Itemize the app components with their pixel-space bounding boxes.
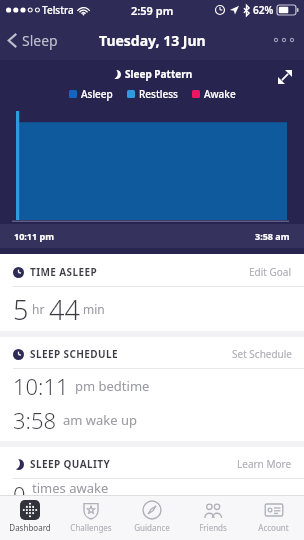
staticText: 10:11	[13, 371, 69, 401]
staticText: 10:11 pm	[14, 230, 54, 242]
button[interactable]: Set Schedule	[220, 341, 304, 367]
button[interactable]: Learn More	[225, 451, 304, 477]
button[interactable]: TIME ASLEEP	[0, 254, 304, 331]
staticText: Dashboard	[9, 522, 51, 533]
staticText: 2:59 pm	[131, 3, 174, 18]
staticText: Account	[258, 522, 289, 533]
staticText: 3:58 am	[255, 230, 290, 242]
staticText: Guidance	[134, 522, 170, 533]
button[interactable]: SLEEP SCHEDULE	[0, 337, 304, 441]
button[interactable]: Friends	[182, 496, 243, 540]
staticText: Learn More	[237, 457, 292, 471]
staticText: hr	[32, 301, 45, 317]
button[interactable]: More options	[264, 28, 304, 52]
staticText: 5	[13, 291, 29, 328]
staticText: Telstra	[42, 3, 74, 17]
staticText: 0	[13, 479, 26, 495]
staticText: Set Schedule	[232, 347, 292, 361]
button[interactable]: Edit Goal	[237, 259, 304, 285]
staticText: min	[83, 301, 105, 317]
staticText: 44	[49, 291, 80, 328]
staticText: 3:58	[13, 405, 57, 435]
button[interactable]: Dashboard	[0, 496, 60, 540]
staticText: SLEEP QUALITY	[30, 457, 111, 471]
button[interactable]: Sleep	[0, 25, 68, 56]
staticText: Tuesday, 13 Jun	[99, 31, 206, 50]
button[interactable]: Challenges	[60, 496, 121, 540]
staticText: Asleep	[81, 87, 113, 101]
button[interactable]: Account	[243, 496, 304, 540]
staticText: Awake	[204, 87, 236, 101]
staticText: Sleep Pattern	[125, 67, 193, 81]
button[interactable]: Expand chart	[272, 64, 298, 90]
button[interactable]: SLEEP QUALITY	[0, 447, 304, 495]
staticText: am wake up	[63, 411, 138, 429]
staticText: Challenges	[70, 522, 112, 533]
staticText: Friends	[199, 522, 227, 533]
staticText: SLEEP SCHEDULE	[30, 347, 118, 361]
staticText: Restless	[139, 87, 178, 101]
staticText: Sleep	[22, 31, 58, 50]
staticText: Edit Goal	[249, 265, 292, 279]
staticText: 62%	[253, 3, 274, 17]
staticText: TIME ASLEEP	[30, 265, 98, 279]
button[interactable]: Guidance	[121, 496, 182, 540]
staticText: times awake	[32, 479, 109, 495]
staticText: pm bedtime	[75, 377, 150, 395]
